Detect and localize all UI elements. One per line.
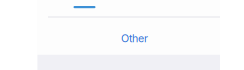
button[interactable]: Other bbox=[115, 29, 154, 48]
staticText: Other bbox=[121, 32, 148, 45]
button[interactable]: Selected tab bbox=[56, 0, 112, 16]
